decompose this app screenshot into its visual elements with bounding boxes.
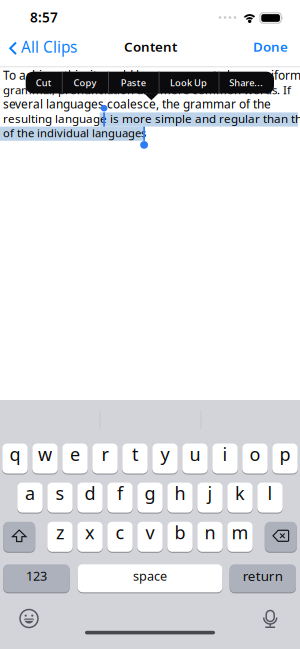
button[interactable]: Cut [32, 72, 56, 93]
staticText: 123 [26, 567, 47, 585]
button[interactable]: x [77, 521, 103, 553]
button[interactable]: m [227, 521, 253, 553]
staticText: To achieve this, it would be necessary t… [3, 67, 300, 83]
button[interactable]: f [107, 482, 133, 514]
button[interactable]: Delete [265, 521, 297, 553]
button[interactable]: b [167, 521, 193, 553]
staticText: a [25, 481, 35, 505]
button[interactable]: p [272, 442, 298, 474]
staticText: n [204, 520, 215, 544]
staticText: d [84, 481, 95, 505]
button[interactable]: g [137, 482, 163, 514]
button[interactable]: q [2, 442, 28, 474]
button[interactable]: 123 [3, 563, 70, 593]
staticText: q [9, 442, 20, 466]
button[interactable]: v [137, 521, 163, 553]
button[interactable]: return [230, 563, 296, 593]
button[interactable]: Emoji [19, 608, 39, 628]
staticText: grammar, pronunciation and more common w… [3, 82, 291, 98]
button[interactable]: d [77, 482, 103, 514]
staticText: return [243, 567, 283, 585]
staticText: w [38, 442, 52, 466]
staticText: Look Up [170, 76, 207, 89]
staticText: Paste [121, 76, 146, 89]
button[interactable]: o [242, 442, 268, 474]
button[interactable]: h [167, 482, 193, 514]
staticText: t [132, 442, 138, 466]
staticText: f [117, 481, 123, 505]
button[interactable]: s [47, 482, 73, 514]
button[interactable]: i [212, 442, 238, 474]
button[interactable]: t [122, 442, 148, 474]
staticText: b [174, 520, 185, 544]
button[interactable]: Done [247, 33, 294, 60]
button[interactable]: y [152, 442, 178, 474]
staticText: i [222, 442, 227, 466]
staticText: several languages coalesce, the grammar … [3, 96, 271, 112]
button[interactable]: j [197, 482, 223, 514]
button[interactable]: l [257, 482, 283, 514]
staticText: j [207, 481, 212, 505]
button[interactable]: Paste [117, 72, 150, 93]
staticText: p [279, 442, 290, 466]
staticText: u [189, 442, 200, 466]
button[interactable]: w [32, 442, 58, 474]
staticText: c [115, 520, 124, 544]
button[interactable]: n [197, 521, 223, 553]
button[interactable]: u [182, 442, 208, 474]
staticText: h [174, 481, 185, 505]
staticText: 8:57 [30, 8, 58, 26]
staticText: resulting language is more simple and re… [3, 110, 300, 126]
staticText: v [145, 520, 154, 544]
staticText: All Clips [21, 36, 77, 57]
staticText: s [55, 481, 64, 505]
staticText: Done [253, 37, 288, 56]
staticText: g [144, 481, 155, 505]
button[interactable]: Share... [225, 72, 267, 93]
button[interactable]: Back [0, 0, 95, 62]
staticText: k [235, 481, 245, 505]
button[interactable]: r [92, 442, 118, 474]
button[interactable]: Shift [3, 521, 35, 553]
button[interactable]: c [107, 521, 133, 553]
button[interactable]: space [78, 563, 222, 593]
staticText: Content [124, 37, 177, 56]
button[interactable]: Dictate [262, 609, 278, 628]
staticText: r [101, 442, 108, 466]
staticText: Cut [36, 76, 52, 89]
staticText: l [267, 481, 272, 505]
button[interactable]: k [227, 482, 253, 514]
staticText: y [160, 442, 169, 466]
staticText: of the individual languages [3, 125, 146, 140]
button[interactable]: Look Up [166, 72, 211, 93]
staticText: Share... [229, 76, 263, 89]
staticText: m [231, 520, 248, 544]
staticText: Copy [73, 76, 96, 89]
staticText: space [133, 567, 167, 585]
staticText: z [56, 520, 64, 544]
button[interactable]: z [47, 521, 73, 553]
staticText: x [85, 520, 95, 544]
button[interactable]: a [17, 482, 43, 514]
staticText: o [249, 442, 260, 466]
button[interactable]: e [62, 442, 88, 474]
staticText: e [70, 442, 80, 466]
button[interactable]: Copy [69, 72, 100, 93]
